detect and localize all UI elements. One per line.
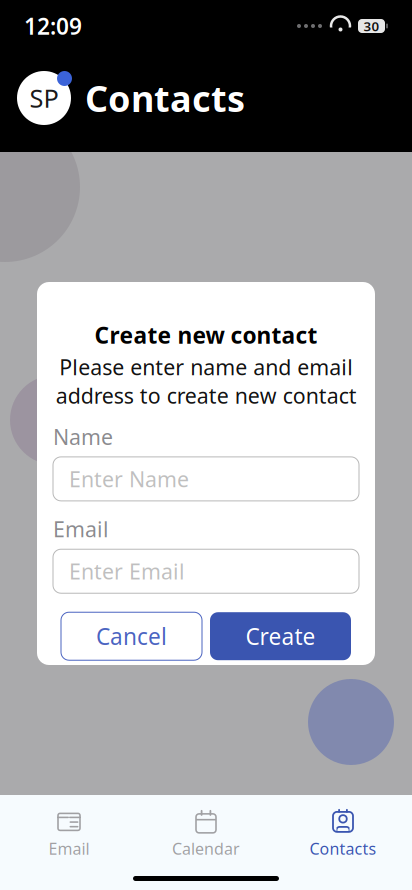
staticText: Cancel — [96, 621, 167, 651]
staticText: Create — [245, 621, 315, 651]
staticText: Create new contact — [94, 320, 317, 350]
staticText: Email — [53, 515, 109, 543]
staticText: Contacts — [85, 74, 245, 122]
button[interactable]: Email — [0, 809, 137, 859]
staticText: Please enter name and email address to c… — [55, 353, 356, 410]
button[interactable]: Enter Email — [53, 549, 359, 593]
staticText: Contacts — [309, 838, 376, 859]
staticText: Name — [53, 423, 113, 451]
button[interactable]: Create — [210, 612, 351, 660]
staticText: 12:09 — [24, 11, 82, 41]
button[interactable]: Calendar — [137, 809, 274, 859]
button[interactable]: Contacts — [274, 809, 411, 859]
staticText: Enter Name — [69, 465, 189, 493]
staticText: SP — [29, 81, 58, 115]
button[interactable]: Enter Name — [53, 457, 359, 501]
staticText: Enter Email — [69, 557, 185, 585]
button[interactable]: Cancel — [61, 612, 202, 660]
staticText: Email — [48, 838, 89, 859]
staticText: 30 — [363, 17, 379, 35]
staticText: Calendar — [172, 838, 240, 859]
